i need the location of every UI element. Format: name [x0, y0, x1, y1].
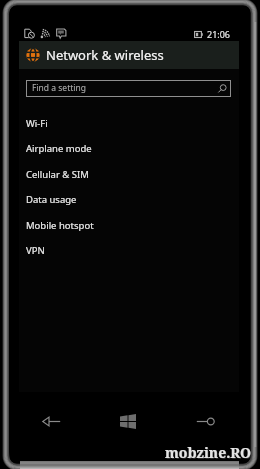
- staticText: VPN: [26, 244, 45, 257]
- staticText: Find a setting: [32, 82, 86, 94]
- button[interactable]: Back: [31, 406, 71, 436]
- button[interactable]: Network & wireless: [19, 41, 239, 69]
- staticText: Airplane mode: [26, 142, 92, 155]
- button[interactable]: Airplane mode: [19, 136, 239, 161]
- button[interactable]: Data usage: [19, 187, 239, 212]
- button[interactable]: VPN: [19, 238, 239, 263]
- staticText: 21:06: [207, 28, 231, 40]
- staticText: Network & wireless: [46, 46, 164, 64]
- staticText: Mobile hotspot: [26, 219, 94, 232]
- button[interactable]: Start: [108, 406, 148, 436]
- button[interactable]: Search: [185, 406, 225, 436]
- staticText: mobzine.RO: [166, 444, 252, 463]
- staticText: Wi-Fi: [26, 117, 48, 130]
- staticText: mobzine.RO: [165, 443, 251, 462]
- button[interactable]: Find a setting: [26, 80, 231, 97]
- staticText: Cellular & SIM: [26, 168, 89, 181]
- staticText: Data usage: [26, 193, 77, 206]
- button[interactable]: Mobile hotspot: [19, 213, 239, 238]
- button[interactable]: Cellular & SIM: [19, 162, 239, 187]
- button[interactable]: Wi-Fi: [19, 111, 239, 136]
